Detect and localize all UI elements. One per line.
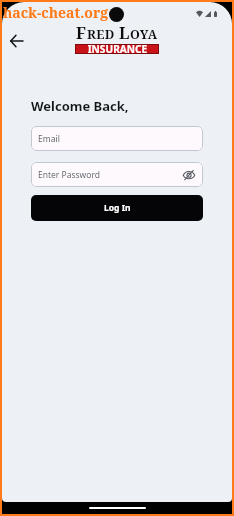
staticText: F (76, 22, 87, 44)
staticText: Email (38, 133, 60, 145)
button[interactable]: Log In (31, 195, 203, 221)
staticText: L (119, 22, 130, 44)
staticText: OYA (130, 26, 158, 43)
staticText: hack-cheat.org (3, 3, 109, 22)
staticText: Welcome Back, (31, 97, 129, 115)
button[interactable]: Enter Password (31, 162, 203, 187)
staticText: Log In (104, 202, 131, 214)
button[interactable]: Show password (181, 167, 197, 183)
button[interactable]: Back (3, 28, 29, 54)
staticText: RED (87, 26, 115, 43)
button[interactable]: Email (31, 126, 203, 151)
staticText: Enter Password (38, 169, 101, 181)
staticText: INSURANCE (88, 42, 147, 54)
